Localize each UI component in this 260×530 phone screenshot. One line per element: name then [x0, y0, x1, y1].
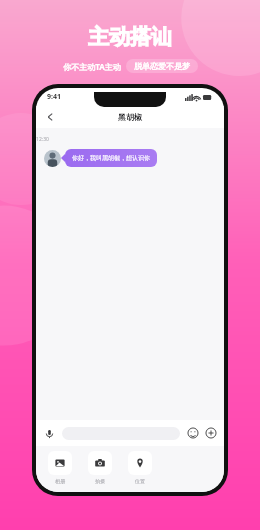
- staticText: 9:41: [47, 92, 61, 102]
- staticText: 你好，我叫黑胡椒，想认识你: [72, 154, 150, 162]
- button[interactable]: Voice: [43, 427, 56, 440]
- staticText: 脱单恋爱不是梦: [134, 61, 190, 71]
- button[interactable]: 你好，我叫黑胡椒，想认识你: [65, 149, 157, 167]
- button[interactable]: Add: [205, 427, 217, 439]
- staticText: 12:30: [36, 136, 49, 143]
- staticText: 黑胡椒: [118, 112, 142, 122]
- button[interactable]: Back: [42, 109, 58, 125]
- staticText: 你不主动TA主动: [63, 61, 121, 72]
- button[interactable]: Emoji: [187, 427, 199, 439]
- button[interactable]: 拍摄: [88, 451, 112, 484]
- staticText: 位置: [135, 478, 145, 484]
- button[interactable]: 位置: [128, 451, 152, 484]
- button[interactable]: 相册: [48, 451, 72, 484]
- staticText: 主动搭讪: [88, 24, 172, 50]
- staticText: 相册: [55, 478, 65, 484]
- staticText: 拍摄: [95, 478, 105, 484]
